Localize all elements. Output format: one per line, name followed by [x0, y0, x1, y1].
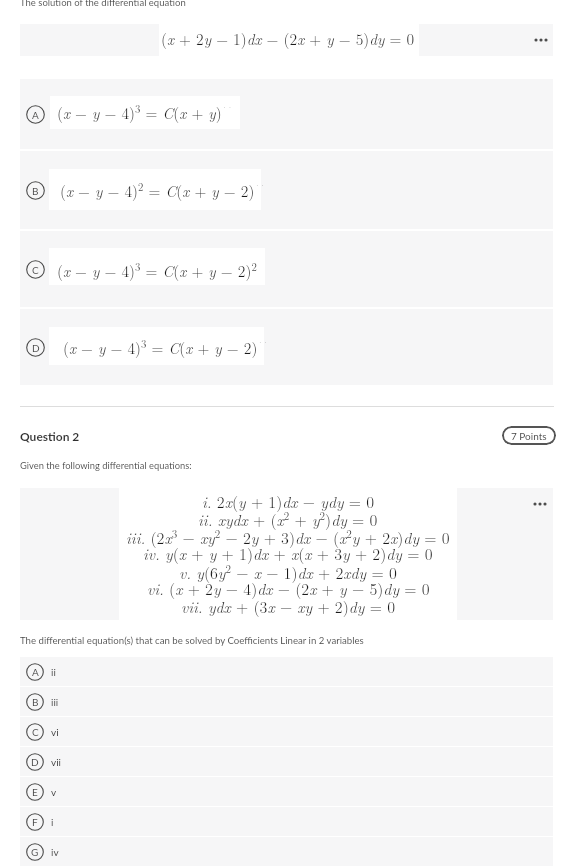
- staticText: (x − y − 4)3 = C(x + y)··: [57, 101, 233, 124]
- staticText: iii: [51, 696, 59, 708]
- button[interactable]: E: [20, 777, 553, 806]
- staticText: i: [51, 816, 54, 828]
- staticText: The solution of the differential equatio…: [20, 0, 186, 8]
- staticText: vii: [51, 756, 61, 768]
- staticText: G: [31, 846, 39, 858]
- staticText: A: [32, 666, 39, 678]
- staticText: iv. y(x + y + 1)dx + x(x + 3y + 2)dy = 0: [143, 542, 433, 565]
- staticText: vi. (x + 2y − 4)dx − (2x + y − 5)dy = 0: [147, 577, 430, 600]
- button[interactable]: B: [20, 151, 553, 229]
- staticText: D: [31, 756, 39, 768]
- staticText: C: [32, 726, 39, 738]
- staticText: D: [32, 342, 40, 354]
- staticText: v. y(6y2 − x − 1)dx + 2xdy = 0: [179, 560, 397, 583]
- staticText: F: [32, 816, 38, 828]
- staticText: The differential equation(s) that can be…: [20, 634, 364, 646]
- button[interactable]: D: [20, 747, 553, 776]
- staticText: (x − y − 4)3 = C(x + y − 2)··: [63, 336, 269, 359]
- staticText: (x − y − 4)3 = C(x + y − 2)2: [57, 259, 257, 282]
- staticText: (x + 2y − 1)dx − (2x + y − 5)dy = 0: [161, 27, 415, 49]
- staticText: B: [32, 696, 39, 708]
- staticText: iv: [51, 846, 59, 858]
- button[interactable]: B: [20, 687, 553, 716]
- button[interactable]: G: [20, 837, 553, 866]
- button[interactable]: D: [20, 309, 553, 385]
- button[interactable]: More options: [530, 32, 552, 48]
- staticText: iii. (2x3 − xy2 − 2y + 3)dx − (x2y + 2x)…: [126, 525, 450, 548]
- staticText: vii. ydx + (3x − xy + 2)dy = 0: [181, 595, 396, 618]
- staticText: ii: [51, 666, 56, 678]
- button[interactable]: More options: [529, 496, 551, 512]
- staticText: (x − y − 4)2 = C(x + y − 2)··: [60, 179, 266, 202]
- staticText: vi: [51, 726, 59, 738]
- staticText: 7 Points: [511, 430, 547, 442]
- staticText: C: [32, 264, 39, 276]
- staticText: v: [51, 786, 57, 798]
- staticText: E: [32, 786, 38, 798]
- staticText: A: [32, 109, 39, 121]
- staticText: i. 2x(y + 1)dx − ydy = 0: [202, 490, 375, 513]
- button[interactable]: A: [20, 79, 553, 149]
- button[interactable]: C: [20, 717, 553, 746]
- button[interactable]: 7 Points: [502, 426, 556, 445]
- staticText: B: [32, 185, 39, 197]
- staticText: ii. xydx + (x2 + y2)dy = 0: [198, 507, 378, 530]
- staticText: Given the following differential equatio…: [20, 460, 192, 471]
- button[interactable]: F: [20, 807, 553, 836]
- staticText: Question 2: [20, 429, 80, 443]
- button[interactable]: C: [20, 231, 553, 307]
- button[interactable]: A: [20, 657, 553, 686]
